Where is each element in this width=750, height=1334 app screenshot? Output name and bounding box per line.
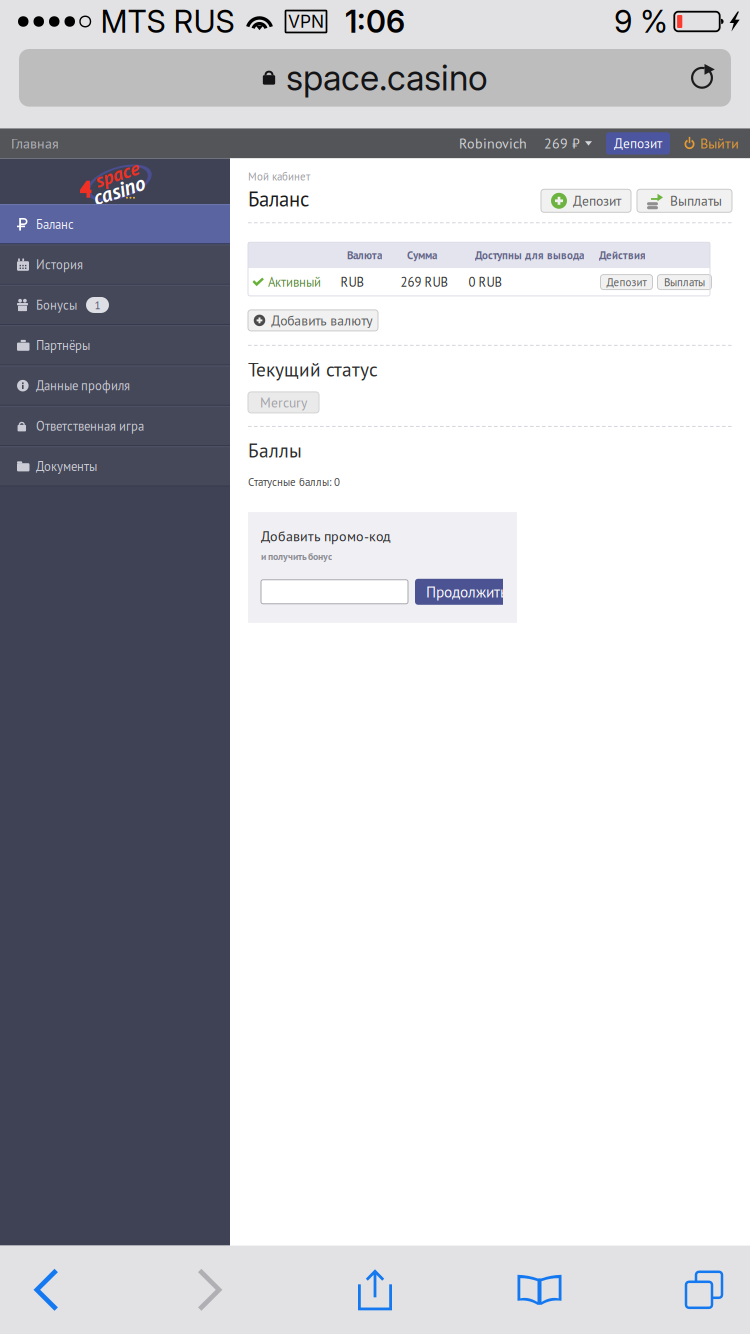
staticText: История [36,256,83,273]
button[interactable]: Депозит [600,275,652,290]
staticText: Выплаты [664,275,705,289]
staticText: Депозит [606,275,646,289]
staticText: Главная [11,134,59,152]
staticText: 9 % [614,3,668,40]
staticText: Партнёры [36,337,90,353]
staticText: 1:06 [345,3,405,40]
staticText: space [97,161,142,187]
button[interactable]: Партнёры [0,325,230,365]
staticText: Ответственная игра [36,418,144,434]
staticText: Активный [268,274,321,290]
staticText: VPN [288,11,324,32]
button[interactable]: Ответственная игра [0,406,230,446]
button[interactable]: Добавить валюту [248,310,378,331]
staticText: Бонусы [36,297,77,313]
staticText: 0 RUB [468,274,501,290]
staticText: RUB [340,274,363,290]
button[interactable]: Баланс [0,204,230,244]
staticText: MTS RUS [100,3,234,40]
button[interactable]: История [0,244,230,285]
button[interactable]: Депозит [541,189,631,212]
button[interactable]: Share [333,1248,417,1332]
button[interactable]: Главная [0,126,67,160]
staticText: Доступны для вывода [475,248,584,262]
button[interactable]: Выплаты [657,275,711,290]
button[interactable]: Выплаты [637,189,732,212]
staticText: Добавить промо-код [261,527,391,545]
staticText: 1 [94,298,100,312]
button[interactable]: Бонусы [0,285,230,325]
button[interactable]: Данные профиля [0,365,230,406]
staticText: Добавить валюту [271,312,372,329]
button[interactable]: Forward [168,1248,252,1332]
staticText: Мой кабинет [248,169,310,183]
button[interactable]: Продолжить [415,579,526,605]
staticText: Продолжить [426,582,507,602]
staticText: casino [90,176,144,204]
staticText: Текущий статус [248,357,378,382]
staticText: Данные профиля [36,377,130,394]
staticText: Баллы [248,438,302,463]
staticText: Баланс [36,216,74,232]
staticText: и получить бонус [261,550,332,563]
button[interactable]: Депозит [592,132,670,155]
staticText: Выйти [700,134,739,152]
staticText: Депозит [614,135,662,152]
button[interactable]: Back [4,1248,88,1332]
button[interactable]: Tabs [662,1248,746,1332]
staticText: Валюта [347,248,382,262]
staticText: space.casino [286,57,488,99]
staticText: Robinovich [459,134,527,152]
button[interactable]: 269 ₽ [527,128,592,158]
button[interactable]: Документы [0,446,230,487]
button[interactable]: Bookmarks [497,1248,581,1332]
staticText: Баланс [248,185,309,212]
button[interactable]: Выйти [670,134,750,152]
staticText: Документы [36,458,97,475]
button[interactable]: Mercury [248,392,319,413]
staticText: Статусные баллы: 0 [248,475,340,489]
staticText: Действия [599,248,646,262]
staticText: Депозит [573,192,621,210]
button[interactable]: Reload [674,49,731,107]
staticText: Выплаты [670,192,722,210]
staticText: Сумма [407,248,437,262]
staticText: 269 RUB [400,274,447,290]
staticText: 269 ₽ [544,134,580,152]
staticText: Mercury [260,394,307,411]
